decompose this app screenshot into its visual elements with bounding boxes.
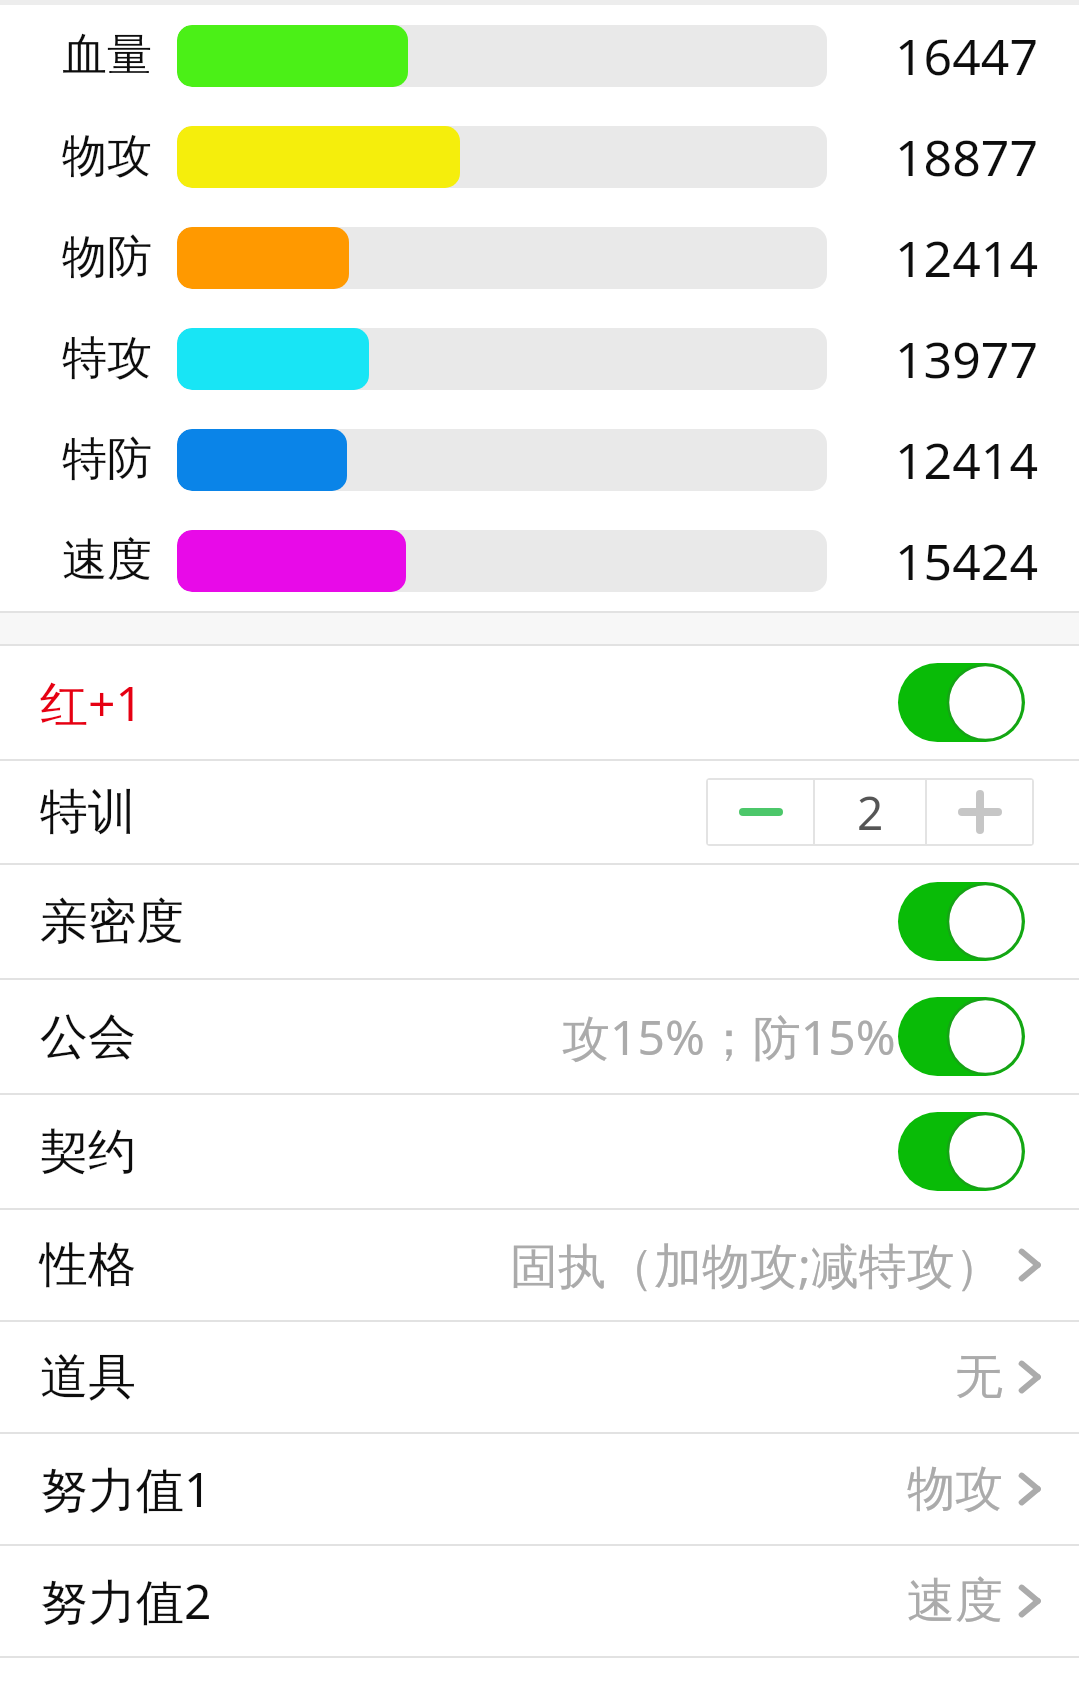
staticText: 物攻 bbox=[62, 128, 152, 185]
staticText: 亲密度 bbox=[40, 892, 184, 952]
staticText: 特防 bbox=[62, 431, 152, 488]
button[interactable]: 红+1 bbox=[898, 663, 1025, 742]
staticText: 13977 bbox=[895, 325, 1038, 393]
staticText: 12414 bbox=[895, 224, 1038, 292]
staticText: 特攻 bbox=[62, 330, 152, 387]
button[interactable]: 契约 bbox=[898, 1112, 1025, 1191]
button[interactable]: 公会 bbox=[898, 997, 1025, 1076]
staticText: 红+1 bbox=[40, 670, 143, 736]
staticText: 性格 bbox=[40, 1235, 136, 1295]
staticText: 无 bbox=[955, 1347, 1003, 1407]
button[interactable]: 亲密度 bbox=[898, 882, 1025, 961]
staticText: 公会 bbox=[40, 1007, 136, 1067]
staticText: 15424 bbox=[895, 527, 1038, 595]
staticText: 契约 bbox=[40, 1122, 136, 1182]
staticText: 速度 bbox=[907, 1571, 1003, 1631]
button[interactable]: 道具 bbox=[0, 1322, 1079, 1432]
button[interactable]: 红+1 bbox=[0, 646, 1079, 759]
staticText: 16447 bbox=[895, 22, 1038, 90]
button[interactable]: 契约 bbox=[0, 1095, 1079, 1208]
button[interactable]: Increase bbox=[927, 780, 1032, 844]
staticText: 物防 bbox=[62, 229, 152, 286]
button[interactable]: 努力值2 bbox=[0, 1546, 1079, 1656]
staticText: 努力值1 bbox=[40, 1456, 212, 1522]
button[interactable]: Decrease bbox=[708, 780, 813, 844]
staticText: 努力值2 bbox=[40, 1568, 212, 1634]
staticText: 物攻 bbox=[907, 1459, 1003, 1519]
staticText: 固执（加物攻;减特攻） bbox=[510, 1232, 1003, 1298]
staticText: 攻15%；防15% bbox=[562, 1004, 896, 1070]
button[interactable]: 努力值1 bbox=[0, 1434, 1079, 1544]
staticText: 血量 bbox=[62, 27, 152, 84]
staticText: 特训 bbox=[40, 782, 136, 842]
staticText: 18877 bbox=[895, 123, 1038, 191]
staticText: 道具 bbox=[40, 1347, 136, 1407]
button[interactable]: 亲密度 bbox=[0, 865, 1079, 978]
staticText: 12414 bbox=[895, 426, 1038, 494]
staticText: 速度 bbox=[62, 532, 152, 589]
button[interactable]: 性格 bbox=[0, 1210, 1079, 1320]
button[interactable]: 公会 bbox=[0, 980, 1079, 1093]
staticText: 2 bbox=[857, 781, 884, 844]
